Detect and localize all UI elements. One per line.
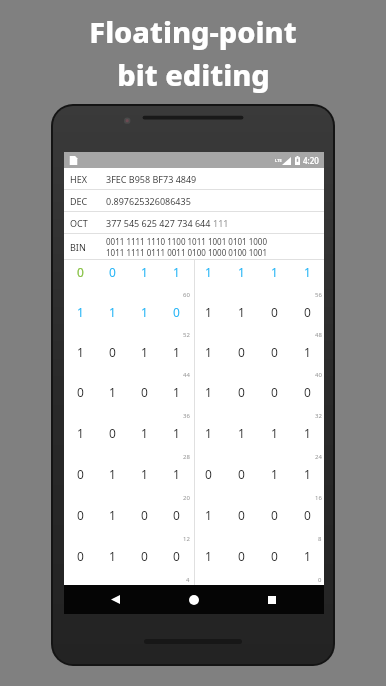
staticText: 1 <box>271 425 278 441</box>
staticText: 0 <box>77 507 84 523</box>
staticText: 0 <box>77 264 84 280</box>
button[interactable]: 1 <box>192 503 225 544</box>
button[interactable]: 1 <box>128 340 160 380</box>
button[interactable]: 1 <box>258 421 291 462</box>
button[interactable]: 1 <box>192 260 225 300</box>
button[interactable]: 1 <box>160 260 192 300</box>
button[interactable]: 0 <box>258 300 291 340</box>
button[interactable]: HEX <box>64 168 324 190</box>
button[interactable]: 0 <box>128 380 160 421</box>
staticText: 44 <box>183 371 190 379</box>
button[interactable]: 0 <box>192 462 225 503</box>
button[interactable]: 1 <box>225 421 258 462</box>
button[interactable]: DEC <box>64 190 324 212</box>
button[interactable]: 0 <box>128 503 160 544</box>
button[interactable]: 1 <box>225 300 258 340</box>
button[interactable]: 1 <box>64 340 96 380</box>
button[interactable]: 1 <box>192 544 225 585</box>
button[interactable]: 1 <box>96 380 128 421</box>
staticText: 1 <box>109 304 116 320</box>
staticText: 1 <box>205 425 212 441</box>
staticText: 0 <box>173 507 180 523</box>
button[interactable]: 0 <box>225 380 258 421</box>
staticText: 48 <box>315 331 322 339</box>
button[interactable]: 0 <box>128 544 160 585</box>
button[interactable]: 0 <box>258 380 291 421</box>
button[interactable]: 1 <box>291 544 324 585</box>
button[interactable]: 1 <box>225 260 258 300</box>
staticText: 1 <box>205 384 212 400</box>
button[interactable]: 0 <box>64 544 96 585</box>
button[interactable]: 1 <box>291 340 324 380</box>
button[interactable]: 1 <box>192 340 225 380</box>
button[interactable]: 0 <box>64 503 96 544</box>
button[interactable]: 0 <box>64 260 96 300</box>
button[interactable]: 1 <box>96 503 128 544</box>
button[interactable]: 1 <box>128 300 160 340</box>
button[interactable]: 0 <box>291 380 324 421</box>
button[interactable]: 0 <box>225 340 258 380</box>
button[interactable]: 0 <box>291 300 324 340</box>
button[interactable]: 1 <box>160 380 192 421</box>
staticText: 1011 1111 0111 0011 0100 1000 0100 1001 <box>106 247 267 258</box>
button[interactable]: BIN <box>64 234 324 260</box>
button[interactable]: 1 <box>192 421 225 462</box>
button[interactable]: 0 <box>258 503 291 544</box>
button[interactable]: 1 <box>160 340 192 380</box>
button[interactable]: 1 <box>128 260 160 300</box>
staticText: BIN <box>70 241 86 253</box>
button[interactable]: 1 <box>64 300 96 340</box>
staticText: 4:20 <box>303 155 319 166</box>
staticText: 0 <box>109 344 116 360</box>
staticText: 0 <box>304 384 311 400</box>
staticText: 0 <box>271 384 278 400</box>
staticText: 0 <box>238 384 245 400</box>
button[interactable]: Recents <box>252 585 291 614</box>
button[interactable]: 1 <box>128 421 160 462</box>
button[interactable]: 0 <box>225 462 258 503</box>
button[interactable]: 1 <box>96 300 128 340</box>
button[interactable]: OCT <box>64 212 324 234</box>
button[interactable]: 0 <box>258 544 291 585</box>
staticText: 0 <box>173 548 180 564</box>
button[interactable]: 1 <box>160 421 192 462</box>
button[interactable]: 0 <box>96 260 128 300</box>
button[interactable]: 1 <box>258 462 291 503</box>
button[interactable]: Home <box>174 585 213 614</box>
button[interactable]: 0 <box>225 544 258 585</box>
button[interactable]: 0 <box>96 421 128 462</box>
button[interactable]: 1 <box>291 462 324 503</box>
button[interactable]: 1 <box>96 544 128 585</box>
button[interactable]: 1 <box>64 421 96 462</box>
button[interactable]: 0 <box>96 340 128 380</box>
button[interactable]: 1 <box>258 260 291 300</box>
staticText: 1 <box>304 466 311 482</box>
staticText: 1 <box>205 507 212 523</box>
staticText: 4 <box>186 576 190 584</box>
button[interactable]: 0 <box>64 380 96 421</box>
button[interactable]: 1 <box>291 260 324 300</box>
button[interactable]: 0 <box>225 503 258 544</box>
staticText: 0 <box>77 548 84 564</box>
button[interactable]: 0 <box>160 503 192 544</box>
staticText: 377 545 625 427 734 644 <box>106 217 213 229</box>
button[interactable]: 1 <box>192 300 225 340</box>
staticText: 1 <box>173 425 180 441</box>
button[interactable]: Back <box>96 585 135 614</box>
staticText: 1 <box>109 507 116 523</box>
staticText: 28 <box>183 453 190 461</box>
button[interactable]: 1 <box>160 462 192 503</box>
button[interactable]: 0 <box>160 300 192 340</box>
button[interactable]: 0 <box>64 462 96 503</box>
button[interactable]: 1 <box>96 462 128 503</box>
button[interactable]: 1 <box>128 462 160 503</box>
staticText: 0 <box>318 576 322 584</box>
button[interactable]: 1 <box>291 421 324 462</box>
staticText: 24 <box>315 453 322 461</box>
button[interactable]: 0 <box>258 340 291 380</box>
staticText: 1 <box>173 264 180 280</box>
button[interactable]: 0 <box>160 544 192 585</box>
staticText: 16 <box>315 494 322 502</box>
button[interactable]: 1 <box>192 380 225 421</box>
button[interactable]: 0 <box>291 503 324 544</box>
